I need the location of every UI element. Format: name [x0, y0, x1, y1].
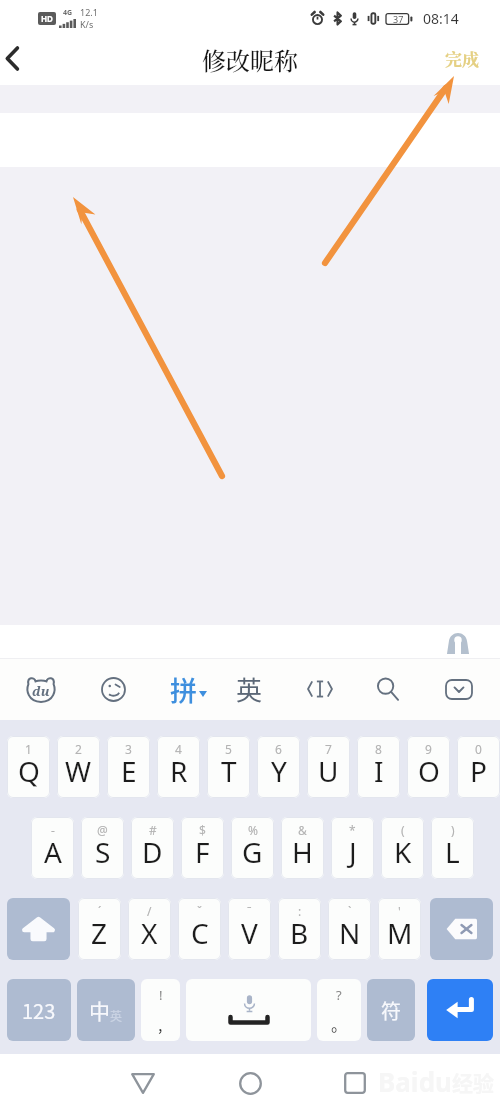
button[interactable]: 7 [307, 736, 350, 798]
staticText: H [292, 833, 313, 871]
button[interactable]: Hide keyboard [435, 658, 483, 720]
button[interactable]: Enter [427, 979, 493, 1041]
button[interactable]: ? [317, 979, 361, 1041]
staticText: , [158, 1012, 163, 1035]
staticText: 08:14 [423, 9, 459, 28]
staticText: 完成 [445, 46, 479, 70]
staticText: O [418, 752, 440, 790]
button[interactable]: - [31, 817, 74, 879]
button[interactable]: 英 [226, 658, 273, 720]
button[interactable]: Backspace [430, 898, 493, 960]
staticText: F [195, 833, 210, 871]
staticText: 中 [89, 995, 110, 1025]
staticText: L [445, 833, 460, 871]
button[interactable]: ˇ [178, 898, 221, 960]
staticText: # [149, 822, 157, 838]
button[interactable]: 4 [157, 736, 200, 798]
staticText: ' [398, 903, 401, 919]
button[interactable]: 9 [407, 736, 450, 798]
button[interactable]: : [278, 898, 321, 960]
button[interactable]: ) [431, 817, 474, 879]
staticText: T [221, 752, 237, 790]
staticText: W [65, 752, 92, 790]
button[interactable]: Emoji [89, 658, 137, 720]
staticText: ˋ [348, 903, 352, 919]
staticText: 37 [393, 13, 404, 25]
button[interactable]: Baidu input [17, 658, 65, 720]
staticText: ! [159, 986, 163, 1004]
button[interactable]: # [131, 817, 174, 879]
button[interactable]: 拼 [164, 658, 212, 720]
button[interactable]: % [231, 817, 274, 879]
staticText: 英 [110, 1007, 123, 1024]
button[interactable]: & [281, 817, 324, 879]
button[interactable]: 符 [367, 979, 415, 1041]
staticText: A [44, 833, 62, 871]
staticText: 经验 [452, 1067, 494, 1097]
staticText: 英 [236, 670, 263, 708]
button[interactable]: 8 [357, 736, 400, 798]
staticText: Z [91, 914, 108, 952]
button[interactable]: Edit cursor [296, 658, 344, 720]
button[interactable]: Home [220, 1055, 280, 1111]
staticText: du [32, 682, 50, 700]
staticText: 拼 [170, 670, 197, 709]
staticText: C [191, 914, 209, 952]
button[interactable]: 3 [107, 736, 150, 798]
button[interactable]: * [331, 817, 374, 879]
staticText: P [470, 752, 487, 790]
staticText: D [142, 833, 163, 871]
staticText: U [318, 752, 339, 790]
staticText: Baidu [378, 1064, 452, 1099]
staticText: K/s [80, 18, 94, 30]
button[interactable]: / [128, 898, 171, 960]
staticText: I [374, 752, 384, 790]
button[interactable]: Recents [325, 1055, 385, 1111]
staticText: R [170, 752, 188, 790]
button[interactable]: 中 [77, 979, 135, 1041]
button[interactable]: ˊ [78, 898, 121, 960]
button[interactable]: 123 [7, 979, 71, 1041]
staticText: * [349, 822, 356, 838]
button[interactable]: Space [186, 979, 311, 1041]
button[interactable]: 5 [207, 736, 250, 798]
button[interactable]: ˉ [228, 898, 271, 960]
button[interactable]: Back [113, 1055, 173, 1111]
button[interactable]: ( [381, 817, 424, 879]
button[interactable]: 6 [257, 736, 300, 798]
staticText: 0 [475, 741, 482, 757]
staticText: ) [451, 822, 455, 838]
staticText: G [242, 833, 263, 871]
staticText: 8 [375, 741, 382, 757]
button[interactable]: @ [81, 817, 124, 879]
staticText: K [394, 833, 412, 871]
staticText: 4 [175, 741, 182, 757]
button[interactable]: 0 [457, 736, 500, 798]
staticText: : [298, 903, 302, 919]
button[interactable]: ! [141, 979, 180, 1041]
staticText: & [298, 822, 307, 838]
staticText: 修改昵称 [202, 42, 298, 76]
button[interactable]: ˋ [328, 898, 371, 960]
button[interactable]: ' [378, 898, 421, 960]
staticText: M [387, 914, 413, 952]
staticText: HD [41, 13, 53, 24]
button[interactable]: 1 [7, 736, 50, 798]
staticText: 5 [225, 741, 232, 757]
button[interactable]: 2 [57, 736, 100, 798]
staticText: % [248, 822, 258, 838]
button[interactable]: Back [0, 36, 46, 84]
staticText: B [290, 914, 309, 952]
staticText: 7 [325, 741, 332, 757]
button[interactable]: $ [181, 817, 224, 879]
button[interactable]: Input method icon [445, 629, 471, 655]
staticText: V [241, 914, 258, 952]
button[interactable]: Shift [7, 898, 70, 960]
staticText: J [349, 833, 357, 871]
button[interactable]: 完成 [424, 37, 500, 83]
staticText: X [141, 914, 158, 952]
staticText: 2 [75, 741, 82, 757]
staticText: ˊ [98, 903, 102, 919]
button[interactable]: Search [364, 658, 412, 720]
staticText: 4G [63, 8, 73, 18]
